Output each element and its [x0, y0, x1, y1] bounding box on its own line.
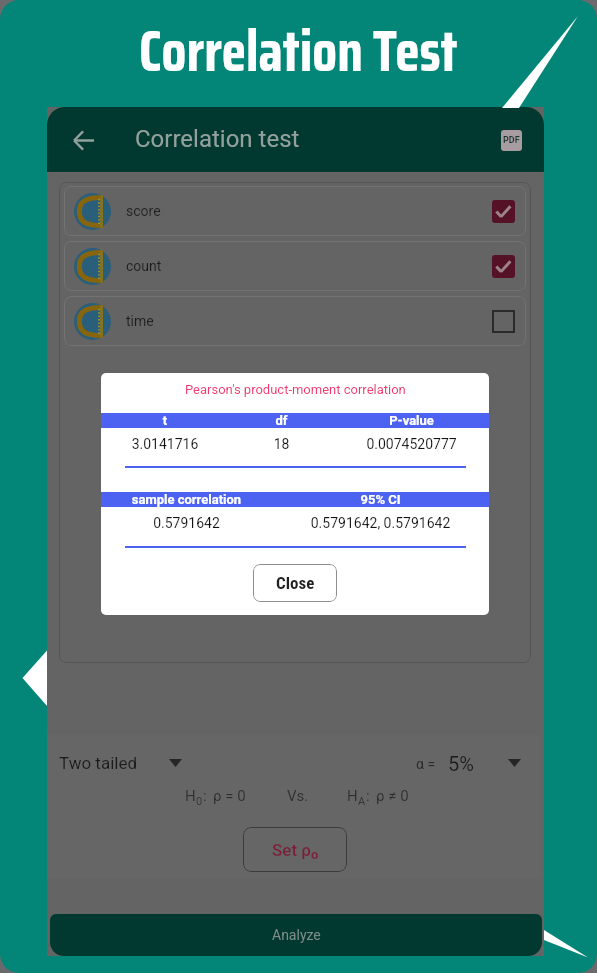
staticText: Correlation Test [139, 6, 458, 96]
staticText: ρ = 0 [213, 787, 246, 805]
staticText: Correlation test [135, 125, 300, 153]
staticText: Pearson's product-moment correlation [185, 382, 406, 397]
button[interactable]: Export PDF [495, 124, 527, 156]
staticText: 0.0074520777 [334, 436, 489, 452]
staticText: Close [276, 573, 315, 593]
staticText: Vs. [287, 787, 309, 805]
staticText: 5% [448, 752, 474, 775]
staticText: score [126, 203, 161, 219]
staticText: α = [416, 756, 436, 772]
button[interactable]: Close [253, 564, 337, 602]
staticText: 95% CI [272, 492, 489, 507]
staticText: t [101, 413, 229, 428]
staticText: Two tailed [59, 753, 138, 773]
staticText: Set ρ [272, 840, 311, 860]
staticText: o [311, 847, 319, 862]
button[interactable]: Two tailed [51, 741, 186, 785]
staticText: 18 [229, 436, 334, 452]
staticText: count [126, 258, 162, 274]
staticText: H [347, 787, 358, 805]
staticText: 0.5791642 [101, 515, 272, 531]
staticText: sample correlation [101, 492, 272, 507]
staticText: Analyze [272, 927, 321, 943]
button[interactable]: Analyze [50, 914, 542, 956]
staticText: 0 [196, 795, 203, 808]
button[interactable]: count [64, 241, 526, 291]
button[interactable]: Set ρ [243, 827, 347, 872]
staticText: : [203, 787, 207, 805]
staticText: 3.0141716 [101, 436, 229, 452]
staticText: A [358, 795, 366, 808]
staticText: : [366, 787, 370, 805]
staticText: ρ ≠ 0 [376, 787, 409, 805]
staticText: 0.5791642, 0.5791642 [272, 515, 489, 531]
staticText: H [185, 787, 196, 805]
button[interactable]: α = [409, 741, 529, 785]
staticText: df [229, 413, 334, 428]
button[interactable]: Back [61, 118, 105, 162]
button[interactable]: score [64, 186, 526, 236]
staticText: P-value [334, 413, 489, 428]
staticText: time [126, 313, 154, 329]
button[interactable]: time [64, 296, 526, 346]
staticText: PDF [503, 135, 520, 146]
